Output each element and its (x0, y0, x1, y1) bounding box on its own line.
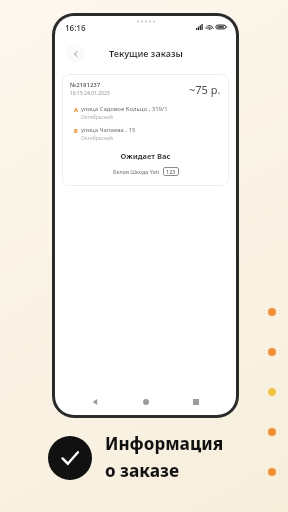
staticText: улица Чапаева , 15 (81, 126, 136, 134)
staticText: 123 (166, 168, 176, 175)
button[interactable]: Home (136, 392, 156, 412)
staticText: Октябрьский (81, 114, 113, 121)
staticText: ~75 р. (189, 82, 221, 97)
staticText: Информация (105, 432, 224, 455)
button[interactable]: Назад (66, 44, 85, 63)
staticText: №2181237 (70, 81, 101, 89)
staticText: о заказе (105, 459, 180, 482)
staticText: Текущие заказы (109, 47, 183, 59)
staticText: Ожидает Вас (70, 151, 221, 161)
staticText: B (74, 127, 78, 134)
button[interactable]: Recents (186, 392, 206, 412)
button[interactable]: Back (85, 392, 105, 412)
button[interactable]: №2181237 (62, 74, 229, 186)
staticText: Октябрьский (81, 135, 113, 142)
staticText: Белая Шкода Yeti (113, 168, 160, 175)
staticText: 16:16 (65, 22, 86, 33)
staticText: 16:15 24.01.2023 (70, 90, 110, 97)
staticText: A (74, 106, 78, 113)
staticText: улица Садовое Кольцо , 319/1 (81, 105, 168, 113)
